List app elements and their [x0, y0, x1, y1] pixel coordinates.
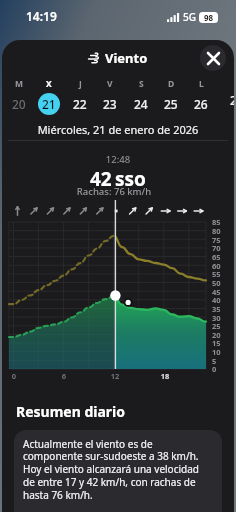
- staticText: 25: [212, 321, 221, 331]
- staticText: 27: [230, 92, 234, 108]
- staticText: 10: [212, 347, 221, 357]
- staticText: 6: [56, 371, 72, 381]
- staticText: 26: [194, 96, 208, 112]
- staticText: Miércoles, 21 de enero de 2026: [2, 122, 234, 137]
- button[interactable]: D: [156, 78, 186, 115]
- staticText: 18: [157, 371, 173, 381]
- button[interactable]: M: [4, 78, 34, 115]
- button[interactable]: L: [186, 78, 216, 115]
- staticText: 98: [204, 12, 214, 23]
- staticText: 40: [212, 295, 221, 305]
- staticText: 55: [212, 269, 221, 279]
- button[interactable]: X: [34, 78, 64, 115]
- staticText: 12: [107, 371, 123, 381]
- staticText: 14:19: [26, 8, 57, 24]
- staticText: 12:48: [2, 153, 234, 166]
- button[interactable]: V: [95, 78, 125, 115]
- staticText: X: [46, 78, 52, 90]
- staticText: 15: [212, 338, 221, 348]
- staticText: 0: [6, 371, 22, 381]
- staticText: 35: [212, 304, 221, 314]
- button[interactable]: Actualmente el viento es de componente s…: [14, 430, 222, 512]
- staticText: 5G: [183, 10, 196, 24]
- staticText: 42: [90, 166, 112, 192]
- staticText: 0: [212, 364, 217, 374]
- staticText: 20: [12, 96, 26, 112]
- staticText: sso: [115, 166, 146, 192]
- staticText: 65: [212, 252, 221, 262]
- button[interactable]: Viento: [88, 49, 148, 67]
- staticText: 75: [212, 235, 221, 245]
- staticText: Rachas: 76 km/h: [2, 185, 230, 198]
- staticText: 85: [212, 217, 221, 227]
- staticText: L: [199, 78, 204, 90]
- staticText: 23: [103, 96, 117, 112]
- staticText: Viento: [105, 49, 148, 67]
- staticText: M: [15, 78, 24, 90]
- staticText: 70: [212, 243, 221, 253]
- staticText: V: [107, 78, 113, 90]
- staticText: 24: [134, 96, 148, 112]
- staticText: 22: [73, 96, 87, 112]
- staticText: 20: [212, 330, 221, 340]
- staticText: 50: [212, 278, 221, 288]
- button[interactable]: Close: [200, 45, 226, 71]
- staticText: J: [79, 78, 82, 90]
- button[interactable]: S: [126, 78, 156, 115]
- button[interactable]: J: [65, 78, 95, 115]
- staticText: 80: [212, 226, 221, 236]
- staticText: 45: [212, 287, 221, 297]
- staticText: Resumen diario: [16, 402, 126, 421]
- staticText: 25: [164, 96, 178, 112]
- staticText: 5: [212, 356, 217, 366]
- staticText: 60: [212, 261, 221, 271]
- staticText: 30: [212, 313, 221, 323]
- staticText: D: [168, 78, 175, 90]
- staticText: S: [139, 78, 144, 90]
- staticText: 21: [42, 96, 56, 112]
- staticText: Actualmente el viento es de componente s…: [23, 437, 213, 502]
